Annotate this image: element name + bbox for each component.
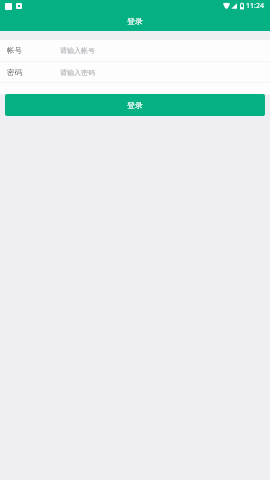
other: Signal	[231, 1, 237, 11]
staticText: 帐号	[7, 46, 22, 55]
staticText: 登录	[127, 100, 143, 110]
staticText: 请输入密码	[60, 68, 95, 77]
staticText: 11:24	[246, 1, 264, 11]
button[interactable]: 登录	[5, 94, 265, 116]
other: Wi-Fi	[223, 1, 230, 11]
staticText: 密码	[7, 68, 22, 77]
button[interactable]: 帐号	[0, 40, 270, 61]
staticText: 请输入帐号	[60, 46, 95, 55]
other: Battery	[240, 1, 244, 11]
button[interactable]: 密码	[0, 62, 270, 82]
staticText: 登录	[127, 16, 143, 26]
